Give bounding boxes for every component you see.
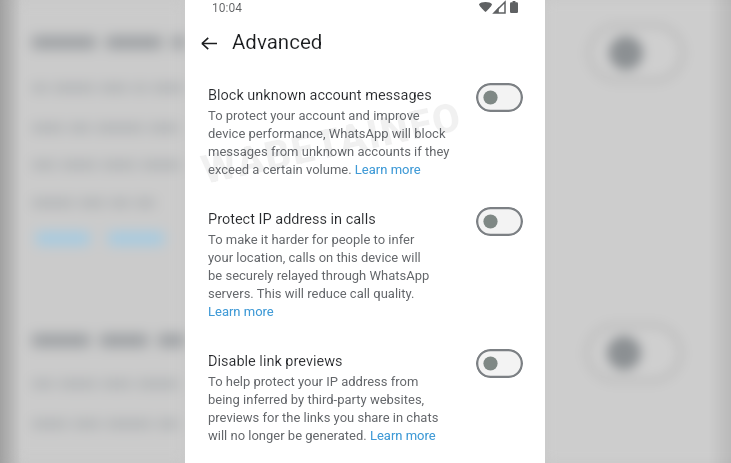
staticText: To make it harder for people to infer — [208, 232, 415, 247]
staticText: 10:04 — [212, 1, 242, 15]
button[interactable]: Protect IP address in calls — [185, 202, 545, 330]
staticText: be securely relayed through WhatsApp — [208, 268, 430, 283]
staticText: device performance, WhatsApp will block — [208, 126, 446, 141]
button[interactable]: exceed a certain volume. Learn more — [208, 162, 421, 177]
button[interactable]: Learn more — [208, 304, 274, 319]
staticText: To protect your account and improve — [208, 108, 420, 123]
staticText: Disable link previews — [208, 353, 343, 370]
staticText: Advanced — [232, 30, 323, 54]
staticText: your location, calls on this device will — [208, 250, 421, 265]
button[interactable]: Disable link previews toggle — [476, 349, 523, 378]
staticText: WABETAINFO — [197, 93, 466, 194]
button[interactable]: Protect IP address in calls toggle — [476, 207, 523, 236]
staticText: Block unknown account messages — [208, 87, 432, 104]
staticText: servers. This will reduce call quality. — [208, 286, 415, 301]
button[interactable]: Disable link previews — [185, 344, 545, 454]
button[interactable]: Back — [189, 23, 229, 63]
staticText: being inferred by third-party websites, — [208, 392, 425, 407]
staticText: To help protect your IP address from — [208, 374, 419, 389]
button[interactable]: will no longer be generated. Learn more — [208, 428, 436, 443]
button[interactable]: Block unknown account messages toggle — [476, 83, 523, 112]
staticText: messages from unknown accounts if they — [208, 144, 450, 159]
button[interactable]: Block unknown account messages — [185, 78, 545, 188]
staticText: Protect IP address in calls — [208, 211, 376, 228]
staticText: previews for the links you share in chat… — [208, 410, 439, 425]
